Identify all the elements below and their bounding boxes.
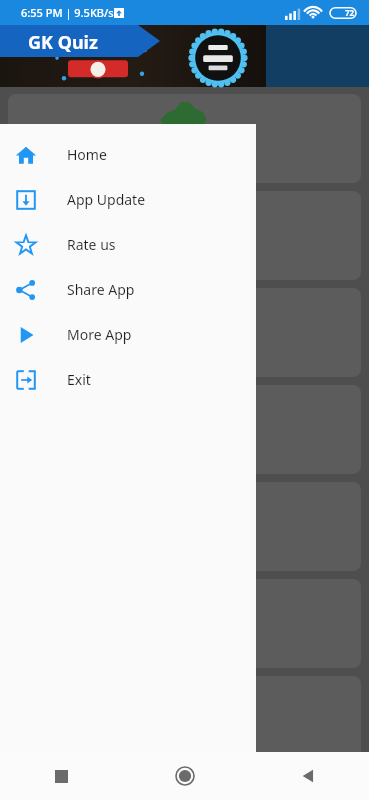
staticText: More App: [67, 325, 132, 344]
button[interactable]: Back: [246, 752, 369, 800]
button[interactable]: Malayalam: [8, 288, 361, 377]
button[interactable]: English: [8, 94, 361, 183]
staticText: Home: [67, 145, 107, 164]
button[interactable]: Haryana: [8, 579, 361, 668]
button[interactable]: Rate us: [0, 222, 256, 267]
staticText: Exit: [67, 370, 91, 389]
button[interactable]: Home: [0, 132, 256, 177]
button[interactable]: Gujarati: [8, 385, 361, 474]
staticText: App Update: [67, 190, 146, 209]
staticText: 6:55 PM | 9.5KB/s: [21, 5, 114, 20]
staticText: 72: [345, 7, 355, 18]
button[interactable]: Exit: [0, 357, 256, 402]
button[interactable]: Chhattisgarh: [8, 482, 361, 571]
staticText: GK Quiz: [28, 30, 98, 55]
button[interactable]: Recent apps: [0, 752, 123, 800]
button[interactable]: More App: [0, 312, 256, 357]
button[interactable]: Share App: [0, 267, 256, 312]
staticText: Share App: [67, 280, 135, 299]
button[interactable]: Home: [123, 752, 246, 800]
button[interactable]: App Update: [0, 177, 256, 222]
button[interactable]: Telugu: [8, 191, 361, 280]
staticText: Rate us: [67, 235, 116, 254]
button[interactable]: Kerala: [8, 676, 361, 765]
